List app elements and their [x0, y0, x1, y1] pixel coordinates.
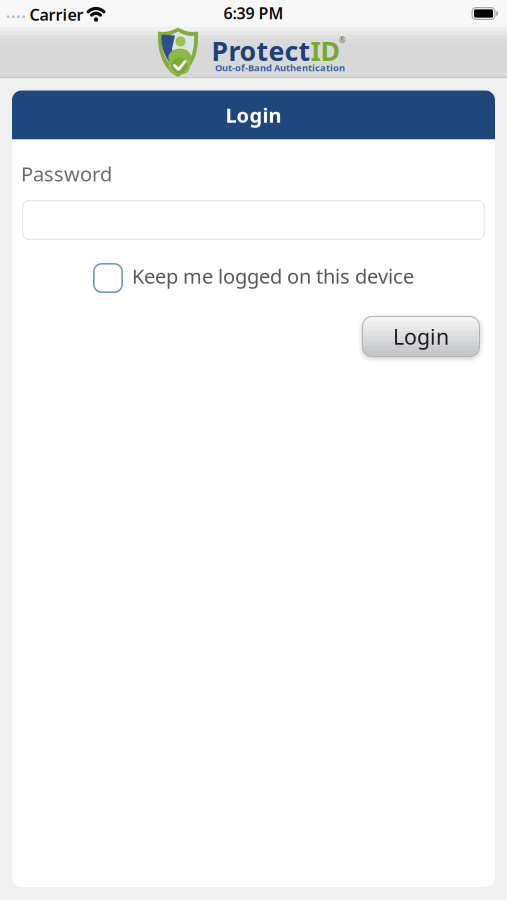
staticText: Login — [225, 102, 281, 128]
staticText: Login — [393, 322, 449, 351]
button[interactable]: Password — [22, 200, 485, 240]
staticText: ID — [310, 33, 340, 68]
button[interactable]: Login — [362, 316, 480, 357]
button[interactable]: Keep me logged on this device — [93, 263, 414, 293]
staticText: Password — [21, 160, 112, 187]
staticText: Carrier — [29, 4, 83, 25]
staticText: Out-of-Band Authentication — [215, 61, 345, 74]
staticText: Protect — [211, 33, 310, 68]
staticText: Keep me logged on this device — [132, 263, 414, 289]
staticText: 6:39 PM — [223, 2, 283, 24]
staticText: ® — [339, 34, 346, 45]
